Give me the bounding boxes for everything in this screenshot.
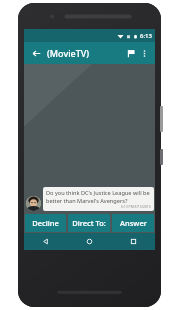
button[interactable]: Direct To: (68, 214, 110, 232)
staticText: Answer (120, 218, 147, 228)
button[interactable]: Recent apps (111, 233, 155, 250)
button[interactable]: Decline (25, 214, 66, 232)
button[interactable]: Home (67, 233, 111, 250)
button[interactable]: Back (29, 46, 43, 60)
button[interactable]: Contact avatar (26, 196, 41, 211)
staticText: 6:13 PM 8/15/2016 (121, 204, 151, 209)
staticText: 6:13 (140, 32, 152, 40)
button[interactable]: Do you think DC's Justice League will be… (43, 187, 154, 211)
button[interactable]: Back (24, 233, 67, 250)
staticText: (MovieTV) (47, 47, 90, 59)
button[interactable]: Flag (124, 46, 138, 60)
staticText: Direct To: (72, 218, 106, 228)
staticText: Decline (32, 218, 59, 228)
button[interactable]: Answer (112, 214, 154, 232)
button[interactable]: More options (138, 47, 150, 59)
staticText: Do you think DC's Justice League will be… (46, 189, 151, 204)
